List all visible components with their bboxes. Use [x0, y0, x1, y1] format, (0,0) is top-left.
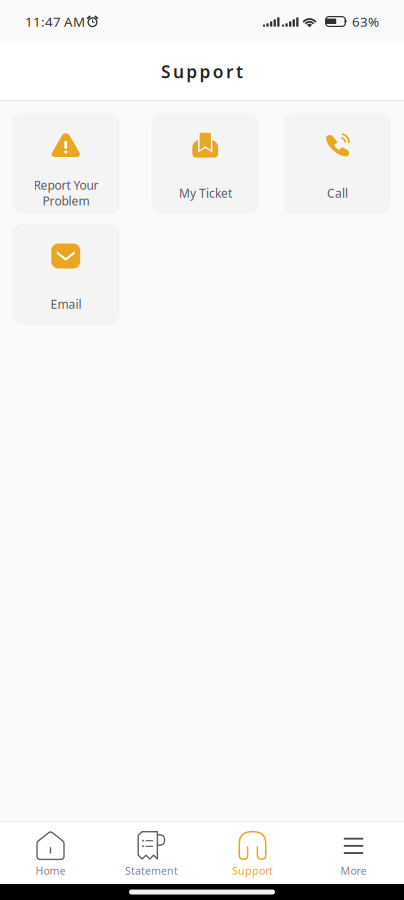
staticText: p — [186, 60, 197, 83]
staticText: Email — [50, 296, 81, 312]
staticText: Home — [35, 863, 65, 878]
staticText: Statement — [125, 863, 178, 878]
button[interactable]: Home — [0, 819, 101, 887]
staticText: Support — [232, 863, 273, 878]
staticText: Report Your Problem — [33, 177, 98, 209]
button[interactable]: Call — [283, 113, 391, 214]
staticText: p — [199, 60, 210, 83]
button[interactable]: My Ticket — [151, 113, 259, 214]
staticText: r — [226, 60, 234, 83]
staticText: 11:47 AM — [25, 13, 85, 30]
button[interactable]: More — [303, 819, 404, 887]
button[interactable]: Statement — [101, 819, 202, 887]
staticText: More — [340, 863, 366, 878]
staticText: u — [173, 60, 184, 83]
button[interactable]: Support — [202, 819, 303, 887]
staticText: Call — [327, 185, 348, 201]
staticText: o — [213, 60, 224, 83]
staticText: S — [161, 60, 171, 83]
button[interactable]: Email — [12, 224, 119, 325]
button[interactable]: Report Your Problem — [12, 113, 119, 214]
staticText: 63% — [352, 13, 379, 30]
staticText: t — [236, 60, 243, 83]
staticText: My Ticket — [179, 185, 232, 201]
